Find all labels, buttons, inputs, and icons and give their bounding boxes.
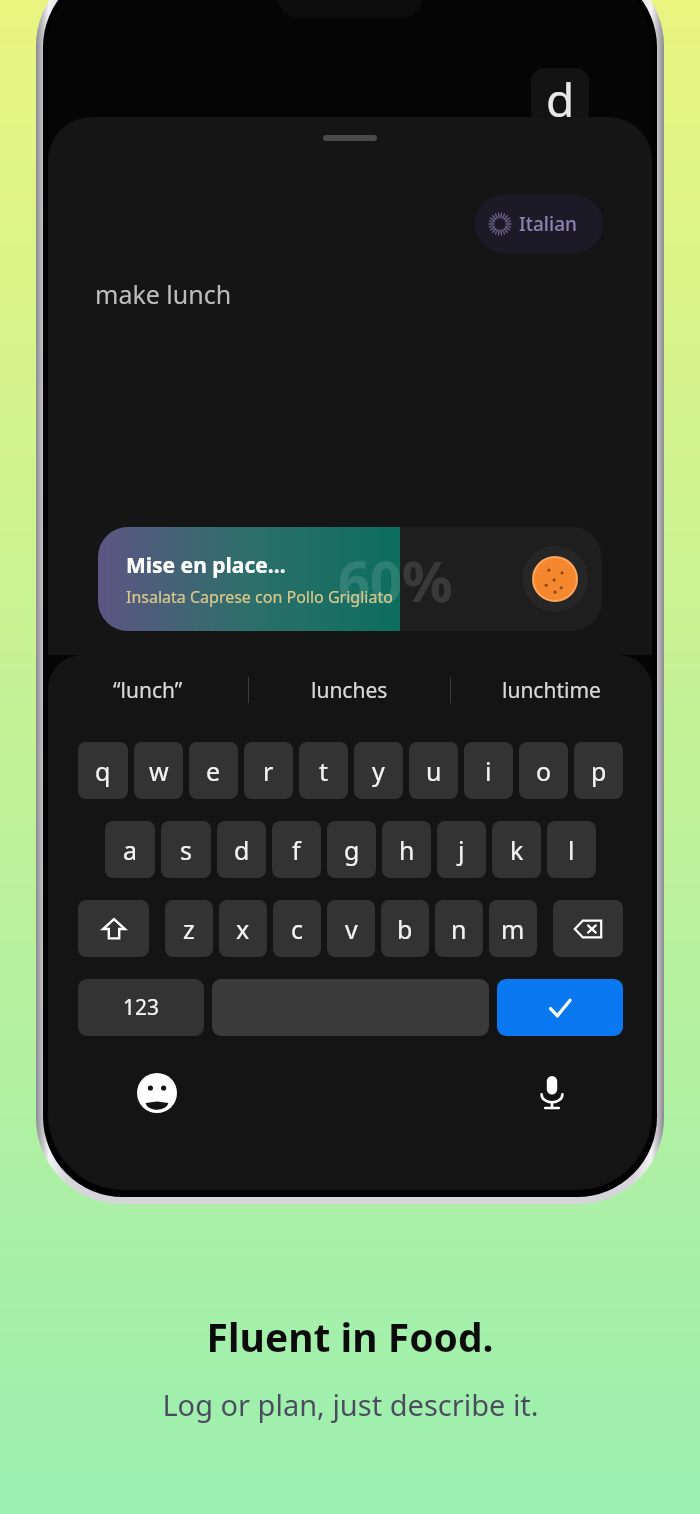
button[interactable]: Shift <box>78 900 149 957</box>
button[interactable]: m <box>489 900 537 957</box>
button[interactable]: 60% <box>98 527 602 631</box>
button[interactable]: a <box>105 821 155 878</box>
staticText: v <box>345 912 358 946</box>
button[interactable]: o <box>519 742 568 799</box>
staticText: w <box>149 754 169 788</box>
button[interactable]: e <box>189 742 238 799</box>
staticText: a <box>123 833 138 867</box>
staticText: Log or plan, just describe it. <box>162 1385 539 1424</box>
staticText: s <box>180 833 192 867</box>
staticText: 123 <box>123 993 160 1022</box>
button[interactable]: Voice input <box>528 1068 576 1116</box>
button[interactable]: x <box>219 900 267 957</box>
button[interactable]: h <box>382 821 431 878</box>
button[interactable]: b <box>381 900 429 957</box>
button[interactable]: Backspace <box>553 900 623 957</box>
staticText: m <box>501 912 525 946</box>
staticText: b <box>397 912 413 946</box>
staticText: d <box>234 833 250 867</box>
button[interactable]: Done <box>497 979 623 1036</box>
staticText: Italian <box>519 211 577 237</box>
button[interactable]: l <box>547 821 596 878</box>
button[interactable]: g <box>327 821 376 878</box>
staticText: lunches <box>311 676 388 705</box>
staticText: h <box>399 833 415 867</box>
button[interactable]: Emoji <box>134 1070 180 1116</box>
button[interactable]: v <box>327 900 375 957</box>
staticText: l <box>568 833 575 867</box>
button[interactable]: 123 <box>78 979 204 1036</box>
button[interactable]: p <box>574 742 623 799</box>
staticText: c <box>291 912 304 946</box>
button[interactable]: w <box>134 742 183 799</box>
staticText: o <box>536 754 552 788</box>
button[interactable]: Italian <box>475 195 603 253</box>
button[interactable]: i <box>464 742 513 799</box>
button[interactable]: u <box>409 742 458 799</box>
staticText: x <box>236 912 250 946</box>
button[interactable]: s <box>161 821 211 878</box>
staticText: “lunch” <box>113 676 183 705</box>
staticText: j <box>458 833 465 867</box>
button[interactable]: k <box>492 821 541 878</box>
staticText: y <box>372 754 385 788</box>
staticText: n <box>451 912 467 946</box>
staticText: i <box>485 754 492 788</box>
button[interactable]: q <box>78 742 128 799</box>
staticText: p <box>591 754 607 788</box>
button[interactable]: f <box>272 821 321 878</box>
staticText: Fluent in Food. <box>206 1310 494 1363</box>
staticText: k <box>510 833 524 867</box>
staticText: make lunch <box>95 277 232 311</box>
staticText: g <box>344 833 360 867</box>
staticText: e <box>206 754 221 788</box>
staticText: q <box>95 754 111 788</box>
staticText: Insalata Caprese con Pollo Grigliato <box>126 586 393 608</box>
button[interactable]: lunches <box>249 655 450 725</box>
staticText: Mise en place… <box>126 551 286 580</box>
staticText: u <box>426 754 442 788</box>
staticText: d <box>546 68 575 126</box>
staticText: t <box>319 754 329 788</box>
staticText: lunchtime <box>502 676 601 705</box>
button[interactable]: lunchtime <box>451 655 652 725</box>
button[interactable]: n <box>435 900 483 957</box>
staticText: f <box>292 833 301 867</box>
button[interactable]: y <box>354 742 403 799</box>
staticText: r <box>263 754 274 788</box>
button[interactable]: z <box>165 900 213 957</box>
staticText: 60% <box>338 542 453 618</box>
button[interactable]: t <box>299 742 348 799</box>
button[interactable]: j <box>437 821 486 878</box>
button[interactable]: r <box>244 742 293 799</box>
staticText: z <box>183 912 195 946</box>
button[interactable]: c <box>273 900 321 957</box>
button[interactable]: d <box>217 821 266 878</box>
button[interactable]: “lunch” <box>48 655 248 725</box>
